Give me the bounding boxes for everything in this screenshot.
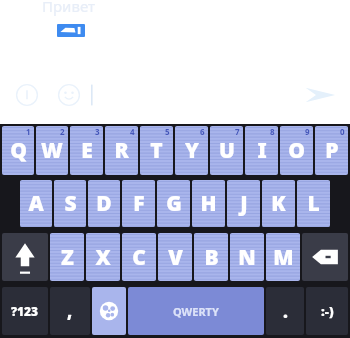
staticText: 2 xyxy=(60,126,65,137)
staticText: U xyxy=(219,136,235,165)
staticText: I xyxy=(257,136,267,165)
staticText: Привет xyxy=(42,0,95,16)
staticText: , xyxy=(67,300,73,323)
button[interactable]: ?123 xyxy=(2,287,48,335)
staticText: N xyxy=(238,243,256,272)
staticText: :-) xyxy=(321,302,334,320)
button[interactable]: D xyxy=(88,180,120,227)
button[interactable]: Attach xyxy=(10,78,44,112)
button[interactable]: Y xyxy=(175,126,208,175)
staticText: P xyxy=(325,136,339,165)
staticText: H xyxy=(200,189,217,218)
button[interactable]: Emoji xyxy=(52,78,86,112)
staticText: 4 xyxy=(130,126,135,137)
staticText: E xyxy=(81,136,93,165)
staticText: K xyxy=(271,189,286,218)
staticText: S xyxy=(64,189,77,218)
staticText: R xyxy=(114,136,129,165)
button[interactable]: . xyxy=(266,287,304,335)
staticText: 6 xyxy=(200,126,205,137)
staticText: 1 xyxy=(26,126,31,137)
button[interactable]: B xyxy=(194,233,228,281)
button[interactable]: O xyxy=(280,126,313,175)
staticText: QWERTY xyxy=(173,304,219,319)
button[interactable]: , xyxy=(50,287,90,335)
button[interactable]: U xyxy=(210,126,243,175)
staticText: ?123 xyxy=(11,303,39,319)
button[interactable]: I xyxy=(245,126,278,175)
button[interactable]: QWERTY xyxy=(128,287,264,335)
button[interactable]: L xyxy=(297,180,330,227)
staticText: Y xyxy=(185,136,199,165)
button[interactable]: V xyxy=(158,233,192,281)
staticText: L xyxy=(307,189,320,218)
button[interactable]: A xyxy=(20,180,52,227)
staticText: A xyxy=(28,189,44,218)
staticText: D xyxy=(96,189,112,218)
button[interactable]: P xyxy=(315,126,348,175)
button[interactable]: Shift xyxy=(2,233,48,281)
staticText: . xyxy=(283,300,288,323)
staticText: 3 xyxy=(95,126,100,137)
staticText: Q xyxy=(10,136,27,165)
staticText: M xyxy=(273,243,294,272)
button[interactable]: Attachment xyxy=(57,24,85,37)
staticText: W xyxy=(41,136,63,165)
button[interactable]: J xyxy=(227,180,260,227)
button[interactable]: S xyxy=(54,180,86,227)
staticText: J xyxy=(240,189,248,218)
staticText: T xyxy=(150,136,163,165)
button[interactable]: W xyxy=(36,126,68,175)
button[interactable]: K xyxy=(262,180,295,227)
staticText: C xyxy=(132,243,146,272)
button[interactable]: R xyxy=(105,126,138,175)
button[interactable]: T xyxy=(140,126,173,175)
button[interactable]: Send xyxy=(300,80,340,110)
button[interactable]: Backspace xyxy=(302,233,348,281)
button[interactable]: X xyxy=(86,233,120,281)
staticText: F xyxy=(133,189,145,218)
button[interactable]: :-) xyxy=(306,287,348,335)
staticText: 7 xyxy=(235,126,240,137)
button[interactable]: Z xyxy=(50,233,84,281)
button[interactable]: N xyxy=(230,233,264,281)
button[interactable]: M xyxy=(266,233,300,281)
button[interactable]: C xyxy=(122,233,156,281)
staticText: Z xyxy=(61,243,74,272)
staticText: 9 xyxy=(305,126,310,137)
staticText: V xyxy=(168,243,183,272)
button[interactable]: F xyxy=(122,180,155,227)
button[interactable]: E xyxy=(70,126,103,175)
staticText: 8 xyxy=(270,126,275,137)
staticText: G xyxy=(166,189,182,218)
button[interactable]: Q xyxy=(2,126,34,175)
staticText: B xyxy=(204,243,219,272)
button[interactable]: H xyxy=(192,180,225,227)
staticText: O xyxy=(288,136,305,165)
staticText: 5 xyxy=(165,126,170,137)
staticText: 0 xyxy=(340,126,345,137)
button[interactable]: G xyxy=(157,180,190,227)
staticText: X xyxy=(95,243,111,272)
button[interactable]: Change language xyxy=(92,287,126,335)
